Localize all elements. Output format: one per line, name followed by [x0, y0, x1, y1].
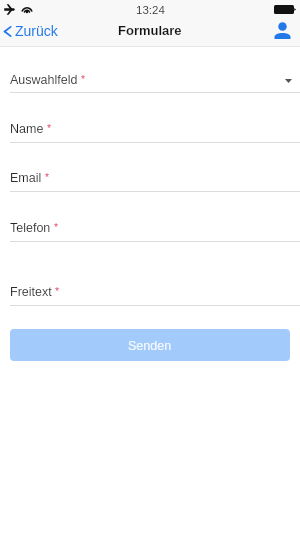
button[interactable]: Name: [0, 97, 300, 143]
button[interactable]: Freitext: [0, 245, 300, 306]
button[interactable]: Senden: [10, 329, 290, 361]
staticText: Senden: [128, 339, 172, 353]
other: Flugmodus: [4, 4, 15, 15]
staticText: *: [55, 285, 60, 297]
staticText: *: [45, 171, 50, 183]
staticText: Freitext: [10, 285, 52, 299]
staticText: Formulare: [118, 23, 182, 38]
staticText: 13:24: [136, 4, 165, 17]
staticText: Auswahlfeld: [10, 73, 78, 87]
staticText: Name: [10, 122, 44, 136]
button[interactable]: Telefon: [0, 195, 300, 242]
button[interactable]: Auswahlfeld: [0, 55, 300, 93]
button[interactable]: Email: [0, 146, 300, 192]
button[interactable]: Profil: [269, 16, 295, 44]
staticText: Telefon: [10, 221, 51, 235]
staticText: *: [54, 221, 59, 233]
staticText: Zurück: [15, 23, 58, 39]
staticText: Email: [10, 171, 42, 185]
staticText: *: [47, 122, 52, 134]
staticText: *: [81, 73, 86, 85]
button[interactable]: Zurück: [3, 23, 58, 39]
